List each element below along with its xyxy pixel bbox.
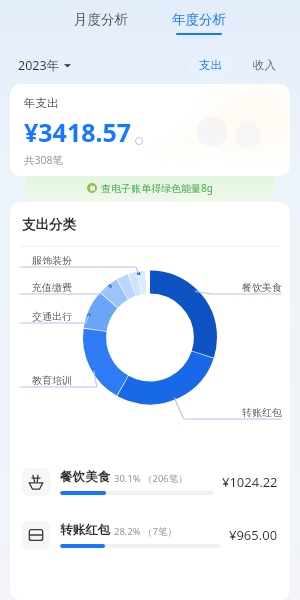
staticText: 年度分析: [172, 11, 226, 28]
button[interactable]: 年度分析: [164, 8, 234, 38]
button[interactable]: 收入: [247, 55, 282, 75]
staticText: 交通出行: [32, 310, 72, 323]
staticText: 转账红包: [60, 522, 110, 538]
staticText: 共308笔: [24, 153, 64, 167]
staticText: 充值缴费: [32, 281, 72, 294]
staticText: 支出: [199, 58, 222, 72]
button[interactable]: 年支出: [10, 84, 290, 176]
staticText: （206笔）: [143, 472, 188, 485]
staticText: （7笔）: [143, 525, 177, 538]
button[interactable]: 支出: [188, 55, 233, 75]
staticText: 查电子账单得绿色能量8g: [101, 181, 213, 195]
button[interactable]: 月度分析: [66, 8, 136, 38]
staticText: ¥1024.22: [222, 473, 278, 491]
staticText: 28.2%: [114, 525, 141, 538]
staticText: 2023年: [18, 57, 60, 74]
staticText: ¥965.00: [229, 526, 278, 544]
button[interactable]: [26, 168, 274, 202]
staticText: 餐饮美食: [60, 469, 110, 485]
staticText: 收入: [253, 58, 276, 72]
button[interactable]: 餐饮美食: [10, 455, 290, 508]
staticText: 支出分类: [22, 216, 76, 233]
staticText: 餐饮美食: [242, 281, 282, 294]
staticText: 服饰装扮: [32, 254, 72, 267]
staticText: ¥3418.57: [24, 115, 132, 149]
staticText: 转账红包: [242, 406, 282, 419]
staticText: 蚂: [90, 185, 95, 191]
staticText: 年支出: [24, 96, 59, 110]
staticText: 教育培训: [32, 374, 72, 387]
staticText: 月度分析: [74, 11, 128, 28]
staticText: 30.1%: [114, 472, 141, 485]
button[interactable]: 转账红包: [10, 508, 290, 561]
button[interactable]: 2023年: [16, 55, 73, 76]
